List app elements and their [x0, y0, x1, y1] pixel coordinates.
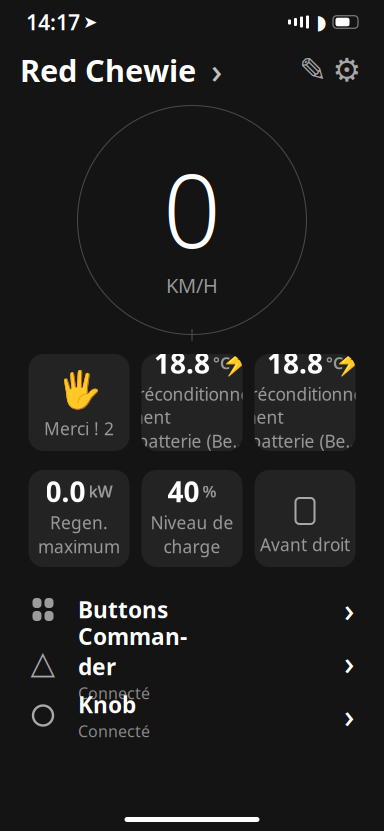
staticText: batterie (Be… — [137, 430, 246, 453]
staticText: △ — [30, 644, 55, 681]
button[interactable]: ⚡ — [254, 354, 355, 451]
staticText: › — [211, 47, 222, 93]
staticText: Merci ! 2 — [44, 417, 114, 440]
staticText: kW — [88, 481, 112, 502]
staticText: 18.8 — [154, 344, 210, 382]
staticText: maximum — [38, 535, 120, 558]
staticText: 🖐 — [56, 369, 101, 410]
button[interactable]: △ — [0, 636, 384, 689]
staticText: › — [344, 588, 354, 631]
button[interactable]: 0.0 — [28, 470, 129, 567]
staticText: charge — [163, 535, 220, 558]
staticText: 0.0 — [45, 473, 85, 510]
button[interactable]: Red Chewie — [20, 41, 222, 99]
staticText: °C — [213, 352, 230, 373]
staticText: Préconditionnement — [127, 383, 256, 429]
staticText: Connecté — [78, 720, 150, 742]
staticText: Buttons — [78, 594, 168, 624]
staticText: Commander — [78, 621, 187, 681]
staticText: Avant droit — [260, 533, 350, 556]
button[interactable]: Buttons — [0, 583, 384, 636]
button[interactable]: Edit — [296, 53, 330, 87]
staticText: 14:17 — [26, 8, 80, 36]
button[interactable]: Knob — [0, 689, 384, 742]
staticText: ⚡ — [221, 347, 253, 376]
staticText: › — [344, 641, 354, 684]
staticText: Préconditionnement — [240, 383, 369, 429]
staticText: ⚡ — [334, 347, 366, 376]
staticText: Connecté — [78, 682, 150, 704]
staticText: Niveau de — [150, 511, 233, 534]
staticText: › — [344, 694, 354, 737]
staticText: % — [202, 481, 216, 502]
staticText: ✎ — [299, 51, 327, 89]
staticText: batterie (Be… — [250, 430, 359, 453]
staticText: °C — [326, 352, 343, 373]
staticText: Red Chewie — [20, 50, 196, 90]
button[interactable]: 🖐 — [28, 354, 129, 451]
button[interactable]: ⚡ — [141, 354, 242, 451]
staticText: ➤ — [83, 12, 98, 32]
staticText: Regen. — [50, 511, 108, 534]
staticText: ◗ — [316, 11, 327, 33]
staticText: 18.8 — [267, 344, 323, 382]
button[interactable]: Avant droit — [254, 470, 355, 567]
staticText: 40 — [167, 473, 199, 510]
staticText: Knob — [78, 689, 136, 719]
staticText: 0 — [163, 141, 221, 276]
button[interactable]: 40 — [141, 470, 242, 567]
button[interactable]: Settings — [330, 53, 364, 87]
staticText: KM/H — [166, 272, 218, 299]
staticText: ⚙ — [332, 52, 361, 88]
